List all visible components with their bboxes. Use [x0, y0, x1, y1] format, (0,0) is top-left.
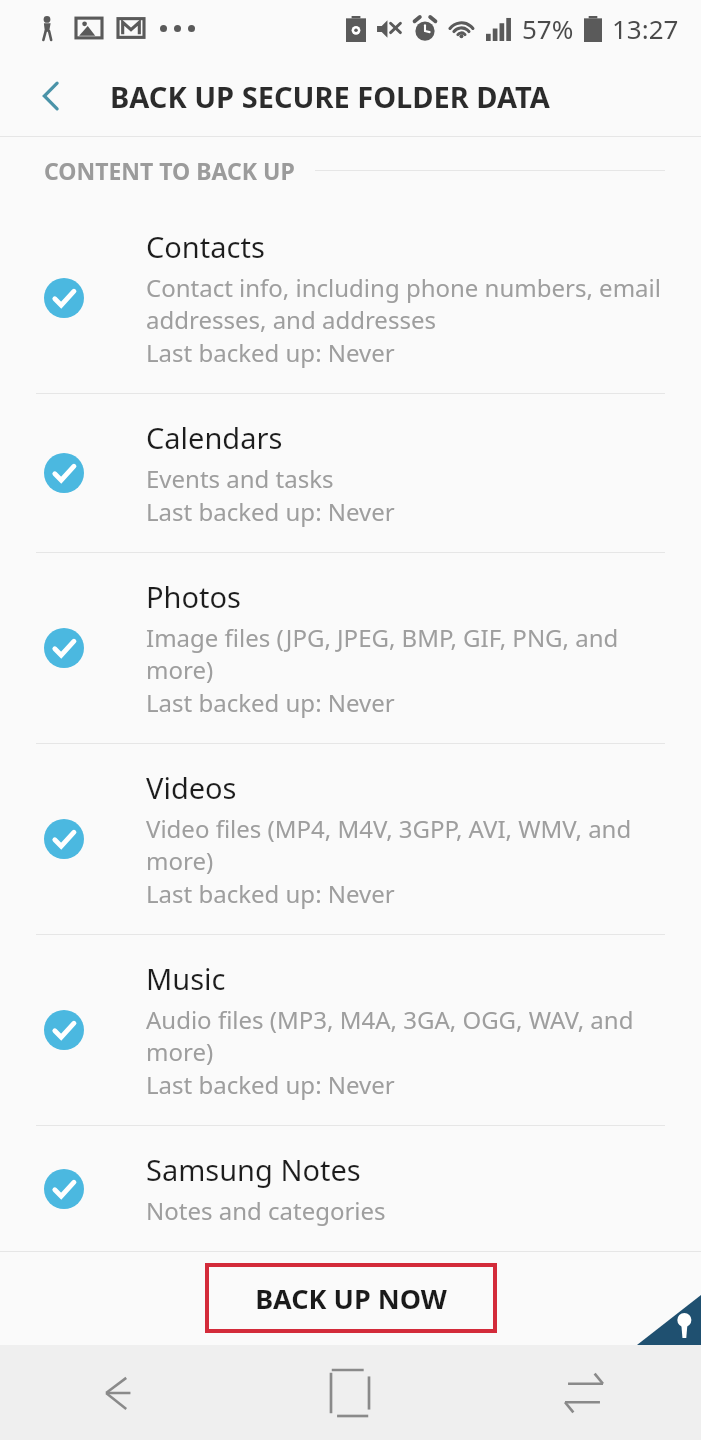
staticText: Last backed up: Never [146, 336, 395, 369]
button[interactable]: Calendars [0, 394, 701, 552]
staticText: Contacts [146, 227, 265, 266]
button[interactable]: Photos [0, 553, 701, 743]
button[interactable]: Home [233, 1345, 467, 1440]
staticText: Events and tasks [146, 462, 334, 495]
staticText: BACK UP SECURE FOLDER DATA [110, 77, 550, 116]
staticText: Music [146, 959, 226, 998]
staticText: Last backed up: Never [146, 495, 395, 528]
staticText: Videos [146, 768, 237, 807]
button[interactable]: Samsung Notes [0, 1126, 701, 1251]
staticText: BACK UP NOW [255, 1280, 447, 1317]
button[interactable]: Contacts [0, 203, 701, 393]
button[interactable]: Music [0, 935, 701, 1125]
staticText: Contact info, including phone numbers, e… [146, 271, 661, 336]
staticText: Image files (JPG, JPEG, BMP, GIF, PNG, a… [146, 621, 665, 686]
staticText: Samsung Notes [146, 1150, 361, 1189]
staticText: Photos [146, 577, 241, 616]
button[interactable]: Back [0, 1345, 233, 1440]
button[interactable]: Recents [467, 1345, 701, 1440]
staticText: 57% [522, 11, 574, 46]
staticText: 13:27 [612, 11, 679, 46]
staticText: Audio files (MP3, M4A, 3GA, OGG, WAV, an… [146, 1003, 665, 1068]
button[interactable]: Videos [0, 744, 701, 934]
staticText: CONTENT TO BACK UP [44, 155, 295, 186]
staticText: Video files (MP4, M4V, 3GPP, AVI, WMV, a… [146, 812, 665, 877]
staticText: Last backed up: Never [146, 877, 395, 910]
staticText: Notes and categories [146, 1194, 386, 1227]
button[interactable]: Navigate up [20, 64, 84, 128]
staticText: Calendars [146, 418, 283, 457]
staticText: Last backed up: Never [146, 1068, 395, 1101]
staticText: Last backed up: Never [146, 686, 395, 719]
button[interactable]: BACK UP NOW [207, 1265, 495, 1331]
